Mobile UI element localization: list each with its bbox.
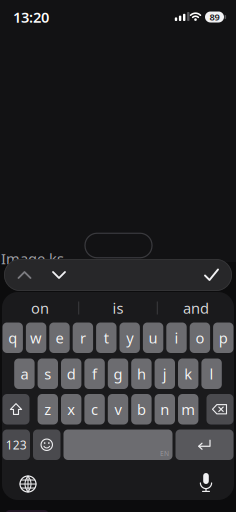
- staticText: a: [20, 364, 28, 383]
- button[interactable]: Previous field: [10, 261, 38, 289]
- button[interactable]: g: [108, 358, 128, 389]
- button[interactable]: r: [73, 322, 93, 353]
- button[interactable]: d: [61, 358, 81, 389]
- button[interactable]: m: [178, 394, 198, 424]
- button[interactable]: s: [38, 358, 58, 389]
- staticText: d: [67, 364, 76, 383]
- button[interactable]: l: [201, 358, 222, 389]
- button[interactable]: Return: [175, 429, 233, 460]
- staticText: w: [30, 328, 42, 347]
- button[interactable]: y: [119, 322, 140, 353]
- staticText: o: [195, 328, 204, 347]
- staticText: i: [174, 328, 178, 347]
- button[interactable]: i: [166, 322, 187, 353]
- button[interactable]: u: [143, 322, 163, 353]
- staticText: g: [113, 364, 122, 383]
- button[interactable]: z: [38, 394, 58, 424]
- staticText: y: [126, 328, 133, 347]
- staticText: and: [183, 298, 209, 318]
- staticText: e: [55, 328, 63, 347]
- button[interactable]: is: [83, 296, 153, 320]
- staticText: l: [210, 364, 214, 383]
- staticText: f: [92, 364, 97, 383]
- button[interactable]: v: [108, 394, 128, 424]
- button[interactable]: 123: [2, 429, 30, 460]
- staticText: on: [31, 298, 49, 318]
- button[interactable]: Dictation: [191, 469, 221, 499]
- button[interactable]: Delete: [206, 394, 233, 424]
- button[interactable]: Done: [197, 261, 225, 289]
- button[interactable]: x: [61, 394, 81, 424]
- staticText: r: [80, 328, 86, 347]
- button[interactable]: j: [155, 358, 175, 389]
- staticText: c: [91, 399, 98, 419]
- staticText: 123: [6, 437, 27, 453]
- button[interactable]: Space: [63, 429, 172, 460]
- staticText: Image ks: [1, 249, 64, 268]
- button[interactable]: o: [190, 322, 210, 353]
- staticText: n: [160, 399, 169, 419]
- button[interactable]: b: [131, 394, 152, 424]
- staticText: p: [219, 328, 228, 347]
- button[interactable]: w: [26, 322, 46, 353]
- staticText: v: [114, 399, 121, 419]
- staticText: is: [112, 298, 123, 318]
- button[interactable]: Shift: [2, 394, 29, 424]
- button[interactable]: Next keyboard: [13, 469, 43, 499]
- button[interactable]: q: [2, 322, 23, 353]
- staticText: m: [181, 399, 195, 419]
- button[interactable]: f: [84, 358, 105, 389]
- staticText: k: [184, 364, 192, 383]
- staticText: z: [44, 399, 51, 419]
- staticText: h: [137, 364, 146, 383]
- button[interactable]: Emoji: [33, 429, 60, 460]
- button[interactable]: on: [5, 296, 75, 320]
- button[interactable]: p: [213, 322, 233, 353]
- button[interactable]: n: [155, 394, 175, 424]
- staticText: EN: [160, 449, 169, 458]
- button[interactable]: t: [96, 322, 116, 353]
- button[interactable]: a: [14, 358, 35, 389]
- staticText: 13:20: [13, 7, 49, 27]
- staticText: 89: [209, 11, 219, 23]
- button[interactable]: e: [49, 322, 70, 353]
- staticText: q: [8, 328, 17, 347]
- staticText: b: [137, 399, 146, 419]
- staticText: u: [149, 328, 158, 347]
- button[interactable]: and: [161, 296, 231, 320]
- button[interactable]: Next field: [45, 261, 73, 289]
- button[interactable]: h: [131, 358, 152, 389]
- staticText: j: [163, 364, 167, 383]
- button[interactable]: k: [178, 358, 198, 389]
- staticText: s: [44, 364, 51, 383]
- staticText: x: [67, 399, 75, 419]
- staticText: t: [104, 328, 109, 347]
- button[interactable]: c: [84, 394, 105, 424]
